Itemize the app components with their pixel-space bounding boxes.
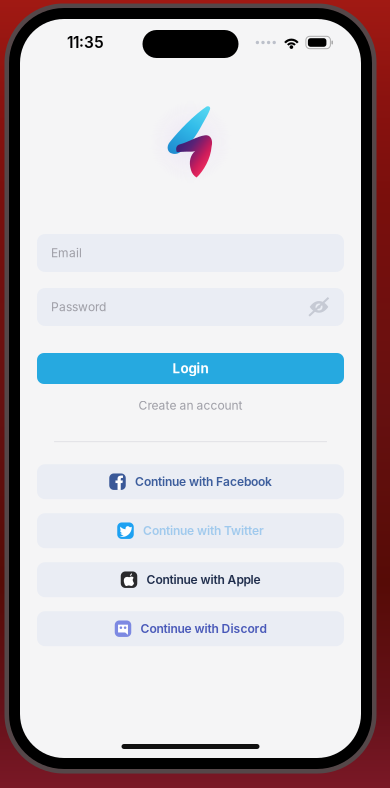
staticText: Password <box>51 300 106 314</box>
staticText: Create an account <box>138 398 242 413</box>
staticText: Login <box>172 360 208 376</box>
staticText: 11:35 <box>67 33 104 52</box>
staticText: Continue with Discord <box>140 621 266 636</box>
button[interactable]: Create an account <box>37 397 344 414</box>
button[interactable]: Login <box>37 353 344 384</box>
staticText: Email <box>51 246 82 260</box>
button[interactable]: Continue with Apple <box>37 562 344 597</box>
button[interactable]: Continue with Discord <box>37 611 344 646</box>
staticText: Continue with Facebook <box>135 474 272 489</box>
staticText: Continue with Apple <box>146 572 260 587</box>
staticText: Continue with Twitter <box>143 523 264 538</box>
button[interactable]: Continue with Facebook <box>37 464 344 499</box>
button[interactable]: Continue with Twitter <box>37 513 344 548</box>
